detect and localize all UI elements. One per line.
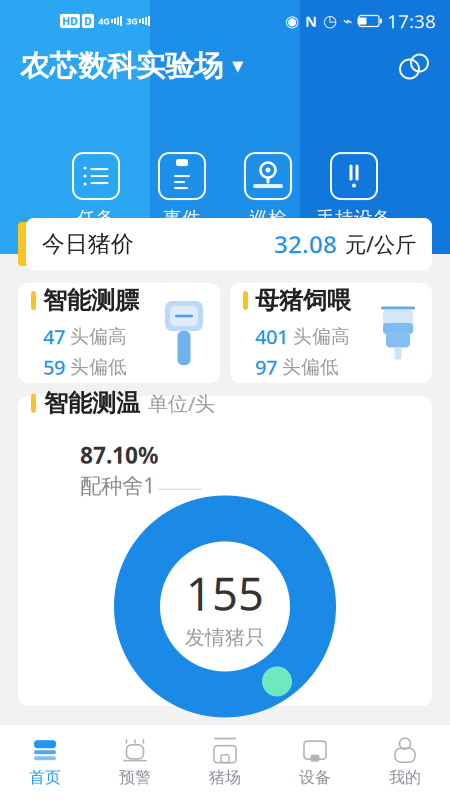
staticText: 97 [255, 354, 277, 380]
button[interactable]: 事件 [139, 153, 225, 230]
staticText: ▼ [232, 58, 243, 74]
button[interactable]: 农芯数科实验场 [20, 48, 243, 84]
staticText: 47 [43, 323, 65, 350]
button[interactable]: 手持设备 [311, 153, 397, 230]
button[interactable]: 我的 [360, 732, 450, 792]
staticText: 3G [126, 15, 138, 27]
staticText: 头偏低 [282, 356, 339, 378]
staticText: 发情猪只 [185, 625, 265, 650]
staticText: 头偏高 [293, 325, 350, 348]
button[interactable]: 设备 [270, 732, 360, 792]
button[interactable]: Messages [398, 51, 430, 81]
button[interactable]: 首页 [0, 732, 90, 792]
staticText: 我的 [389, 768, 421, 787]
staticText: 155 [186, 563, 264, 623]
staticText: HD [62, 14, 78, 28]
staticText: 单位/头 [148, 390, 215, 417]
button[interactable]: 巡检 [225, 153, 311, 230]
staticText: 87.10% [80, 440, 158, 470]
staticText: 4G [98, 15, 110, 27]
staticText: 任务 [77, 207, 115, 230]
staticText: 智能测温 [44, 388, 140, 418]
staticText: 巡检 [249, 207, 287, 230]
staticText: D [84, 14, 92, 28]
staticText: 401 [255, 323, 288, 350]
staticText: 预警 [119, 768, 151, 787]
staticText: 农芯数科实验场 [20, 48, 223, 84]
staticText: 配种舍1 [80, 471, 155, 499]
staticText: 事件 [163, 207, 201, 230]
staticText: ◷ [323, 12, 337, 30]
staticText: 设备 [299, 768, 331, 787]
staticText: 今日猪价 [42, 230, 134, 258]
button[interactable]: 猪场 [180, 732, 270, 792]
staticText: ◉ [285, 12, 299, 30]
staticText: 手持设备 [316, 207, 392, 230]
staticText: 32.08 [274, 228, 337, 260]
staticText: 头偏高 [70, 325, 127, 348]
button[interactable]: 智能测膘 [18, 283, 220, 383]
staticText: ⌁ [343, 12, 353, 30]
staticText: 智能测膘 [43, 286, 139, 315]
staticText: 头偏低 [70, 356, 127, 378]
staticText: 首页 [29, 768, 61, 787]
button[interactable]: 今日猪价 [18, 218, 432, 270]
staticText: 元/公斤 [345, 230, 416, 258]
button[interactable]: 任务 [53, 153, 139, 230]
staticText: 母猪饲喂 [255, 286, 351, 315]
staticText: 猪场 [209, 768, 241, 787]
staticText: N [305, 11, 317, 31]
staticText: 17:38 [387, 9, 436, 33]
button[interactable]: 母猪饲喂 [230, 283, 432, 383]
button[interactable]: 预警 [90, 732, 180, 792]
staticText: 59 [43, 354, 65, 380]
